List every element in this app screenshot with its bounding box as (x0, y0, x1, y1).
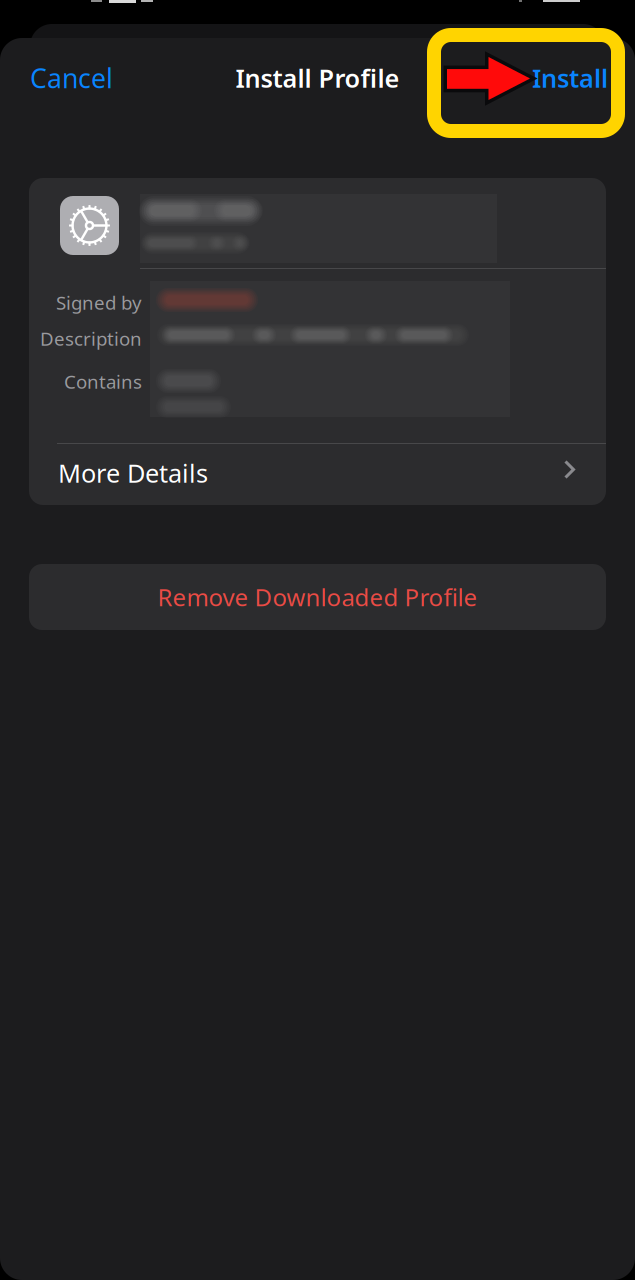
button[interactable]: Install (508, 52, 608, 104)
button[interactable]: Cancel (30, 52, 140, 104)
staticText: More Details (58, 456, 208, 490)
staticText: Description (40, 326, 142, 351)
button[interactable]: Remove Downloaded Profile (29, 564, 606, 630)
staticText: Install Profile (235, 61, 399, 95)
staticText: Contains (64, 369, 142, 394)
staticText: Remove Downloaded Profile (157, 581, 477, 613)
staticText: Cancel (30, 60, 113, 96)
staticText: Install (532, 61, 608, 95)
staticText: Signed by (56, 290, 142, 315)
button[interactable]: More Details (29, 443, 606, 505)
